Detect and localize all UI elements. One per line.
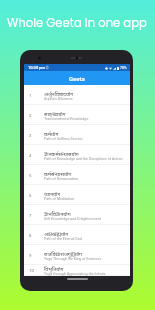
staticText: 8 bbox=[29, 233, 32, 238]
staticText: 10 bbox=[29, 268, 34, 273]
staticText: 2 bbox=[29, 113, 32, 118]
button[interactable]: 1 bbox=[24, 85, 130, 105]
staticText: विभूतियोग bbox=[44, 265, 64, 272]
staticText: साङ्ख्ययोग bbox=[44, 110, 66, 117]
button[interactable]: 10 bbox=[24, 265, 130, 276]
staticText: कर्मसंन्यासयोग bbox=[44, 170, 72, 177]
staticText: 5 bbox=[29, 173, 32, 178]
button[interactable]: Geeta bbox=[24, 71, 130, 85]
staticText: 78% bbox=[120, 66, 127, 70]
staticText: Arjuna's Dilemma bbox=[44, 97, 73, 101]
staticText: ज्ञानकर्मसंन्यासयोग bbox=[44, 150, 79, 157]
staticText: 7 bbox=[29, 213, 32, 218]
staticText: 9 bbox=[29, 253, 32, 258]
button[interactable]: 9 bbox=[24, 245, 130, 265]
staticText: Geeta bbox=[69, 75, 85, 82]
staticText: Path of Selfless Service bbox=[44, 137, 83, 141]
button[interactable]: 3 bbox=[24, 125, 130, 145]
staticText: 10:30 pm bbox=[28, 65, 45, 70]
staticText: Path of Meditation bbox=[44, 197, 75, 201]
staticText: अर्जुनविषादयोग bbox=[44, 90, 74, 97]
staticText: Whole Geeta in one app bbox=[7, 15, 147, 31]
staticText: कर्मयोग bbox=[44, 130, 59, 137]
staticText: Yoga through Appreciating the Infinite bbox=[44, 272, 106, 276]
staticText: Path of Renunciation bbox=[44, 177, 79, 181]
button[interactable]: 8 bbox=[24, 225, 130, 245]
staticText: Yoga Through the King of Sciences bbox=[44, 257, 102, 261]
staticText: Path of the Eternal God bbox=[44, 237, 82, 241]
button[interactable]: 5 bbox=[24, 165, 130, 185]
staticText: Self Knowledge and Enlightenment bbox=[44, 217, 101, 221]
staticText: 3 bbox=[29, 133, 32, 138]
button[interactable]: 7 bbox=[24, 205, 130, 225]
staticText: Transcendental Knowledge bbox=[44, 117, 89, 121]
button[interactable]: 6 bbox=[24, 185, 130, 205]
button[interactable]: 4 bbox=[24, 145, 130, 165]
staticText: ध्यानयोग bbox=[44, 190, 61, 197]
staticText: ज्ञानविज्ञानयोग bbox=[44, 210, 71, 217]
button[interactable]: 2 bbox=[24, 105, 130, 125]
staticText: 4 bbox=[29, 153, 32, 158]
staticText: 6 bbox=[29, 193, 32, 198]
staticText: 1 bbox=[29, 93, 32, 98]
staticText: अक्षरब्रह्मयोग bbox=[44, 230, 69, 237]
staticText: Path of Knowledge and the Disciplines of… bbox=[44, 157, 123, 161]
staticText: राजविद्याराजगुह्ययोग bbox=[44, 250, 83, 257]
